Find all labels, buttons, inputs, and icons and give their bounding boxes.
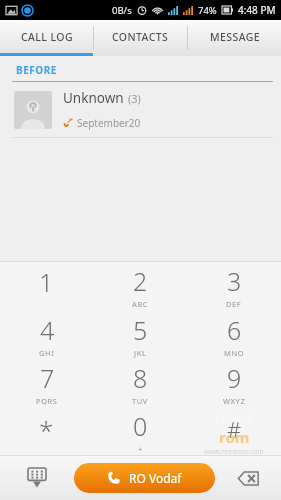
staticText: 3: [227, 264, 242, 298]
button[interactable]: 7: [0, 359, 93, 407]
staticText: 0B/s: [112, 4, 132, 17]
staticText: MESSAGE: [210, 30, 260, 44]
button[interactable]: 8: [93, 359, 187, 407]
staticText: 4:48 PM: [238, 3, 276, 17]
button[interactable]: 2: [93, 262, 187, 311]
button[interactable]: 9: [187, 359, 281, 407]
staticText: CALL LOG: [21, 30, 73, 44]
staticText: need: [215, 407, 253, 427]
staticText: 4: [40, 313, 55, 347]
staticText: #: [227, 414, 242, 444]
staticText: MNO: [224, 348, 245, 358]
staticText: 2: [133, 264, 148, 298]
staticText: rom: [219, 427, 250, 447]
button[interactable]: 0: [93, 407, 187, 455]
staticText: 6: [227, 313, 242, 347]
button[interactable]: 1: [0, 262, 93, 311]
staticText: JKL: [134, 348, 147, 358]
staticText: PQRS: [36, 396, 58, 406]
button[interactable]: Unknown: [0, 82, 281, 137]
button[interactable]: #: [187, 407, 281, 455]
staticText: CONTACTS: [112, 30, 169, 44]
staticText: (3): [128, 91, 141, 106]
button[interactable]: *: [0, 407, 93, 455]
button[interactable]: CONTACTS: [94, 20, 187, 56]
button[interactable]: MESSAGE: [188, 20, 281, 56]
staticText: *: [39, 412, 54, 447]
staticText: BEFORE: [16, 63, 57, 77]
staticText: ABC: [132, 299, 149, 309]
staticText: TUV: [132, 396, 148, 406]
button[interactable]: RO Vodaf: [74, 463, 215, 493]
staticText: 8: [133, 361, 148, 395]
button[interactable]: CALL LOG: [0, 20, 93, 56]
button[interactable]: 6: [187, 311, 281, 359]
staticText: 7: [40, 361, 55, 395]
staticText: GHI: [39, 348, 55, 358]
staticText: 74%: [198, 4, 217, 17]
staticText: DEF: [226, 299, 242, 309]
staticText: RO Vodaf: [129, 470, 182, 486]
staticText: WXYZ: [223, 396, 246, 406]
staticText: Unknown: [63, 89, 124, 107]
button[interactable]: Hide dialpad: [0, 456, 74, 500]
staticText: www.needrom.com: [204, 447, 264, 455]
staticText: +: [138, 444, 143, 454]
staticText: September20: [77, 116, 141, 130]
button[interactable]: 4: [0, 311, 93, 359]
button[interactable]: 5: [93, 311, 187, 359]
button[interactable]: 3: [187, 262, 281, 311]
staticText: 5: [133, 313, 148, 347]
staticText: 0: [133, 409, 148, 443]
staticText: 1: [39, 265, 54, 299]
staticText: 9: [227, 361, 242, 395]
button[interactable]: Backspace: [215, 456, 281, 500]
